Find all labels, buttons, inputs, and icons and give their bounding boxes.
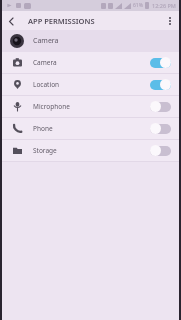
button[interactable]: On xyxy=(150,79,171,90)
staticText: Location xyxy=(33,80,150,89)
button[interactable]: Off xyxy=(150,101,171,112)
button[interactable]: Off xyxy=(150,123,171,134)
button[interactable]: Storage xyxy=(2,140,179,161)
staticText: Microphone xyxy=(33,102,150,111)
button[interactable]: Off xyxy=(150,145,171,156)
staticText: Camera xyxy=(33,36,59,46)
staticText: APP PERMISSIONS xyxy=(28,16,95,26)
button[interactable]: Camera xyxy=(2,30,179,52)
button[interactable]: Camera xyxy=(2,52,179,73)
button[interactable]: On xyxy=(150,57,171,68)
button[interactable]: More options xyxy=(161,12,179,30)
staticText: 61% xyxy=(133,2,143,9)
staticText: Storage xyxy=(33,146,150,155)
button[interactable]: Back xyxy=(2,12,20,30)
button[interactable]: Phone xyxy=(2,118,179,139)
staticText: Camera xyxy=(33,58,150,67)
button[interactable]: Microphone xyxy=(2,96,179,117)
staticText: Phone xyxy=(33,124,150,133)
button[interactable]: Location xyxy=(2,74,179,95)
staticText: 12:26 PM xyxy=(152,2,176,9)
